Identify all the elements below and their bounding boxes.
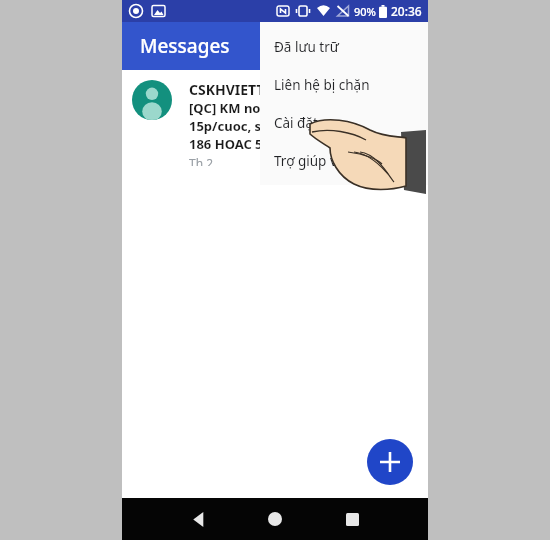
button[interactable]: Home [253,498,297,540]
staticText: Trợ giúp và [274,152,345,170]
staticText: Liên hệ bị chặn [274,76,370,94]
staticText: 186 HOAC 50... [189,135,281,153]
button[interactable]: Back [176,498,220,540]
button[interactable]: Cài đặt [260,104,428,142]
button[interactable]: Trợ giúp và [260,142,428,180]
staticText: Đã lưu trữ [274,38,339,56]
staticText: Th 2 [189,155,214,166]
staticText: [QC] KM noi mang [189,99,305,117]
staticText: 20:36 [391,3,422,19]
staticText: Messages [140,33,230,59]
button[interactable]: CSKHVIETTEL [122,76,428,166]
button[interactable]: Liên hệ bị chặn [260,66,428,104]
button[interactable]: New conversation [367,439,413,485]
staticText: CSKHVIETTEL [189,80,281,99]
staticText: Cài đặt [274,114,318,132]
button[interactable]: Đã lưu trữ [260,28,428,66]
staticText: 90% [354,4,376,19]
button[interactable]: Recent apps [330,498,374,540]
staticText: 15p/cuoc, soan [189,117,286,135]
